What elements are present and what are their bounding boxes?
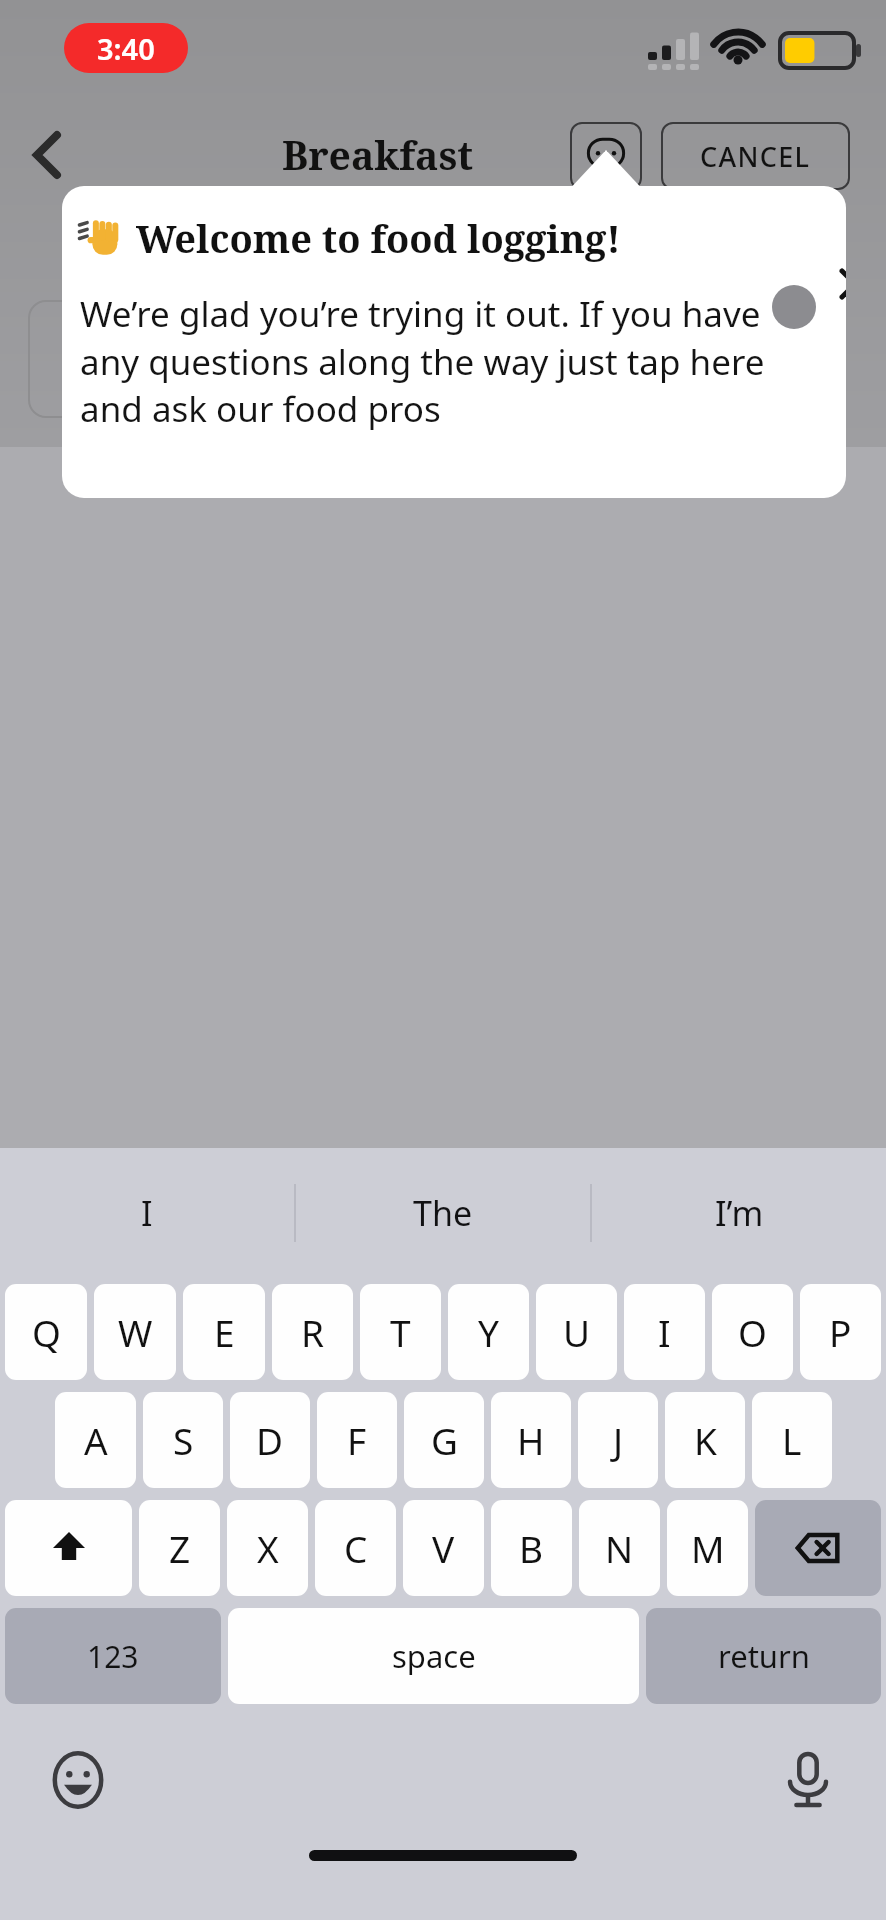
staticText: N (605, 1523, 634, 1573)
staticText: We’re glad you’re trying it out. If you … (80, 290, 786, 432)
staticText: D (256, 1415, 284, 1465)
staticText: Y (478, 1307, 499, 1357)
staticText: K (694, 1415, 717, 1465)
button[interactable]: G (404, 1392, 484, 1488)
button[interactable]: Chat with food pros (570, 122, 642, 190)
button[interactable]: CANCEL (661, 122, 850, 190)
staticText: Welcome to food logging! (136, 212, 621, 264)
button[interactable]: M (667, 1500, 748, 1596)
button[interactable]: Y (448, 1284, 529, 1380)
staticText: Q (32, 1307, 61, 1357)
staticText: return (718, 1635, 810, 1677)
button[interactable]: D (230, 1392, 310, 1488)
staticText: 3:40 (97, 29, 155, 68)
staticText: V (432, 1523, 455, 1573)
button[interactable]: Q (5, 1284, 87, 1380)
button[interactable]: H (491, 1392, 571, 1488)
staticText: R (301, 1307, 325, 1357)
button[interactable]: Backspace (755, 1500, 881, 1596)
staticText: G (431, 1415, 458, 1465)
staticText: 123 (87, 1636, 139, 1677)
button[interactable]: B (491, 1500, 572, 1596)
staticText: I (141, 1190, 153, 1236)
staticText: CANCEL (700, 138, 811, 175)
staticText: E (214, 1307, 235, 1357)
staticText: I’m (715, 1190, 764, 1236)
button[interactable]: Dictate (766, 1738, 850, 1822)
staticText: M (691, 1523, 725, 1573)
staticText: C (344, 1523, 368, 1573)
staticText: F (347, 1415, 367, 1465)
button[interactable]: return (646, 1608, 881, 1704)
staticText: X (257, 1523, 279, 1573)
button[interactable]: Back (0, 112, 86, 198)
button[interactable]: R (272, 1284, 353, 1380)
staticText: S (173, 1415, 194, 1465)
staticText: Breakfast (282, 128, 473, 181)
staticText: P (829, 1307, 852, 1357)
button[interactable]: Z (139, 1500, 220, 1596)
button[interactable]: T (360, 1284, 441, 1380)
staticText: B (519, 1523, 544, 1573)
button[interactable]: A (55, 1392, 136, 1488)
staticText: O (738, 1307, 767, 1357)
staticText: Z (169, 1523, 191, 1573)
button[interactable]: J (578, 1392, 658, 1488)
button[interactable]: C (315, 1500, 396, 1596)
staticText: H (517, 1415, 545, 1465)
button[interactable]: E (183, 1284, 265, 1380)
button[interactable]: N (579, 1500, 660, 1596)
staticText: I (658, 1307, 671, 1357)
button[interactable]: 123 (5, 1608, 221, 1704)
staticText: The (413, 1190, 473, 1236)
button[interactable]: The (296, 1148, 590, 1278)
button[interactable]: K (665, 1392, 745, 1488)
staticText: A (84, 1415, 108, 1465)
button[interactable]: S (143, 1392, 223, 1488)
staticText: U (563, 1307, 591, 1357)
button[interactable]: space (228, 1608, 639, 1704)
button[interactable]: V (403, 1500, 484, 1596)
staticText: W (118, 1307, 153, 1357)
staticText: space (392, 1635, 476, 1677)
button[interactable]: X (227, 1500, 308, 1596)
staticText: J (613, 1415, 624, 1465)
button[interactable]: F (317, 1392, 397, 1488)
button[interactable]: L (752, 1392, 832, 1488)
button[interactable]: W (94, 1284, 176, 1380)
button[interactable]: P (800, 1284, 881, 1380)
staticText: T (390, 1307, 411, 1357)
button[interactable]: U (536, 1284, 617, 1380)
button[interactable]: Close (831, 260, 846, 308)
staticText: L (782, 1415, 802, 1465)
button[interactable]: I’m (592, 1148, 886, 1278)
button[interactable]: O (712, 1284, 793, 1380)
button[interactable]: I (624, 1284, 705, 1380)
button[interactable]: I (0, 1148, 294, 1278)
button[interactable]: Emoji (36, 1738, 120, 1822)
button[interactable]: Shift (5, 1500, 132, 1596)
